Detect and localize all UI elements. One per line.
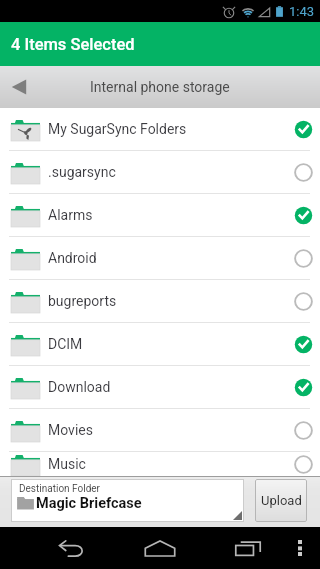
button[interactable]: Not selected [290,159,316,185]
staticText: DCIM [48,336,83,352]
button[interactable]: Selected [290,116,316,142]
button[interactable]: Home [138,527,182,569]
button[interactable]: Selected [290,374,316,400]
staticText: 1:43 [289,4,315,19]
button[interactable]: .sugarsync [0,151,320,194]
button[interactable]: DCIM [0,323,320,366]
button[interactable]: Music [0,452,320,476]
staticText: Magic Briefcase [36,495,142,512]
button[interactable]: Alarms [0,194,320,237]
button[interactable]: Not selected [290,452,316,476]
button[interactable]: Destination Folder [11,479,244,522]
staticText: .sugarsync [48,164,116,180]
staticText: Internal phone storage [90,79,230,95]
button[interactable]: Back [50,527,94,569]
button[interactable]: Android [0,237,320,280]
staticText: Music [48,456,86,472]
button[interactable]: Selected [290,331,316,357]
staticText: 4 Items Selected [11,35,135,54]
staticText: Android [48,250,97,266]
button[interactable]: More options [288,527,312,569]
button[interactable]: Download [0,366,320,409]
staticText: Download [48,379,111,395]
other: Back [11,78,27,96]
staticText: Alarms [48,207,93,223]
button[interactable]: Recent apps [226,527,270,569]
button[interactable]: Not selected [290,417,316,443]
button[interactable]: Selected [290,202,316,228]
button[interactable]: My SugarSync Folders [0,108,320,151]
button[interactable]: Upload [255,479,307,522]
staticText: My SugarSync Folders [48,121,187,137]
staticText: Destination Folder [19,483,100,495]
staticText: bugreports [48,293,117,309]
button[interactable]: Back [0,66,320,108]
staticText: Upload [261,493,302,508]
button[interactable]: bugreports [0,280,320,323]
staticText: Movies [48,422,93,438]
button[interactable]: Not selected [290,288,316,314]
button[interactable]: Not selected [290,245,316,271]
button[interactable]: Movies [0,409,320,452]
